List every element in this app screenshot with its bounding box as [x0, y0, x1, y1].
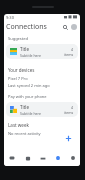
staticText: Title	[20, 104, 29, 110]
staticText: 4	[71, 105, 74, 110]
staticText: Subtitle here	[20, 53, 41, 58]
button[interactable]: Tab 2	[20, 150, 35, 166]
button[interactable]: Tab 5	[65, 150, 80, 166]
button[interactable]: Tab 1	[4, 150, 20, 166]
staticText: Pay with your phone	[8, 94, 47, 99]
staticText: items	[64, 52, 74, 57]
button[interactable]: Tab 4	[50, 150, 65, 166]
button[interactable]: Tab 3	[35, 150, 50, 166]
button[interactable]: Search	[61, 23, 69, 31]
staticText: Last synced 2 min ago	[8, 83, 50, 88]
button[interactable]: Title	[6, 44, 78, 59]
staticText: Title	[20, 46, 29, 52]
staticText: Subtitle here	[20, 111, 41, 116]
staticText: 4	[71, 47, 74, 52]
button[interactable]: Title	[6, 102, 78, 117]
button[interactable]: Account	[70, 23, 78, 31]
staticText: Your devices	[8, 67, 35, 73]
button[interactable]: Add	[63, 133, 74, 144]
staticText: items	[64, 110, 74, 115]
staticText: Suggested	[8, 36, 28, 41]
staticText: Connections	[6, 22, 47, 32]
staticText: No recent activity	[8, 131, 41, 136]
staticText: Pixel 7 Pro	[8, 76, 28, 81]
staticText: 9:30	[6, 15, 14, 20]
staticText: Last week	[8, 122, 29, 128]
